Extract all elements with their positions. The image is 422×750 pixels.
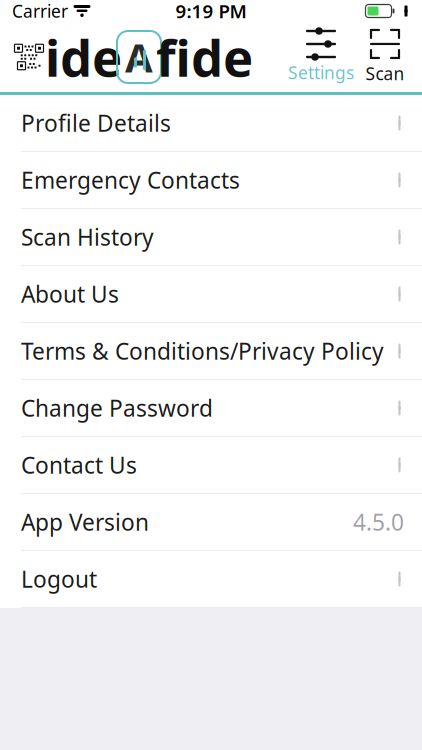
staticText: Carrier (12, 0, 68, 22)
staticText: 9:19 PM (175, 0, 246, 23)
button[interactable]: About Us (0, 266, 422, 323)
staticText: Logout (21, 564, 97, 594)
button[interactable]: Change Password (0, 380, 422, 437)
staticText: 4.5.0 (353, 507, 404, 537)
button[interactable]: Settings (288, 30, 354, 84)
button[interactable]: App Version (0, 494, 422, 551)
button[interactable]: Profile Details (0, 95, 422, 152)
staticText: Emergency Contacts (21, 165, 240, 195)
button[interactable]: Logout (0, 551, 422, 608)
staticText: Settings (288, 61, 354, 84)
staticText: Scan (365, 62, 404, 85)
staticText: fide (156, 23, 253, 91)
staticText: ide (45, 23, 122, 91)
button[interactable]: Contact Us (0, 437, 422, 494)
staticText: App Version (21, 507, 149, 537)
staticText: Contact Us (21, 450, 137, 480)
button[interactable]: Scan History (0, 209, 422, 266)
staticText: Profile Details (21, 108, 171, 138)
button[interactable]: Terms & Conditions/Privacy Policy (0, 323, 422, 380)
staticText: A (125, 30, 153, 83)
staticText: Change Password (21, 393, 213, 423)
staticText: Scan History (21, 222, 154, 252)
button[interactable]: Scan (354, 29, 416, 85)
button[interactable]: Emergency Contacts (0, 152, 422, 209)
staticText: Terms & Conditions/Privacy Policy (21, 336, 384, 366)
staticText: About Us (21, 279, 119, 309)
